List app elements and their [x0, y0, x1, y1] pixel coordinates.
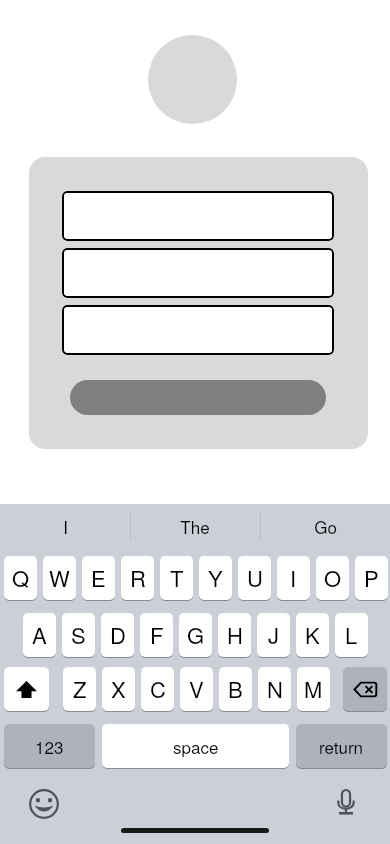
staticText: A — [32, 619, 47, 651]
staticText: C — [150, 673, 166, 705]
button[interactable]: W — [43, 556, 76, 600]
button[interactable]: V — [180, 667, 213, 711]
button[interactable]: E — [82, 556, 115, 600]
staticText: I — [63, 514, 68, 538]
staticText: E — [91, 562, 106, 594]
staticText: J — [268, 619, 280, 651]
staticText: I — [290, 562, 297, 594]
button[interactable]: L — [335, 613, 368, 657]
staticText: 123 — [35, 734, 64, 758]
button[interactable] — [70, 380, 326, 415]
staticText: X — [111, 673, 126, 705]
button[interactable]: N — [258, 667, 291, 711]
button[interactable]: Backspace — [343, 667, 387, 711]
button[interactable]: space — [102, 724, 289, 768]
button[interactable]: K — [296, 613, 329, 657]
staticText: S — [71, 619, 86, 651]
button[interactable]: U — [238, 556, 271, 600]
staticText: F — [150, 619, 164, 651]
button[interactable]: J — [257, 613, 290, 657]
staticText: The — [180, 514, 210, 538]
staticText: M — [304, 673, 323, 705]
button[interactable] — [62, 191, 334, 241]
button[interactable]: P — [355, 556, 388, 600]
staticText: G — [187, 619, 205, 651]
staticText: W — [49, 562, 70, 594]
button[interactable]: D — [101, 613, 134, 657]
button[interactable] — [62, 305, 334, 355]
staticText: Z — [73, 673, 87, 705]
button[interactable]: Shift — [4, 667, 49, 711]
staticText: Y — [208, 562, 223, 594]
button[interactable]: A — [23, 613, 56, 657]
button[interactable]: O — [316, 556, 349, 600]
button[interactable]: Q — [4, 556, 37, 600]
staticText: return — [319, 734, 364, 758]
staticText: K — [305, 619, 320, 651]
button[interactable]: Avatar — [148, 35, 237, 124]
button[interactable]: I — [0, 504, 130, 548]
staticText: Q — [12, 562, 30, 594]
button[interactable]: The — [130, 504, 260, 548]
button[interactable]: G — [179, 613, 212, 657]
staticText: O — [324, 562, 342, 594]
button[interactable]: H — [218, 613, 251, 657]
button[interactable]: M — [297, 667, 330, 711]
button[interactable]: Emoji keyboard — [29, 789, 59, 819]
button[interactable] — [62, 248, 334, 298]
staticText: R — [130, 562, 146, 594]
button[interactable]: I — [277, 556, 310, 600]
staticText: H — [227, 619, 243, 651]
staticText: V — [189, 673, 204, 705]
button[interactable]: T — [160, 556, 193, 600]
button[interactable]: C — [141, 667, 174, 711]
staticText: B — [228, 673, 243, 705]
staticText: N — [267, 673, 283, 705]
button[interactable]: Go — [260, 504, 390, 548]
button[interactable]: B — [219, 667, 252, 711]
button[interactable]: Z — [63, 667, 96, 711]
button[interactable]: S — [62, 613, 95, 657]
staticText: L — [345, 619, 358, 651]
staticText: T — [170, 562, 184, 594]
button[interactable]: Dictation — [331, 787, 361, 817]
staticText: U — [247, 562, 263, 594]
button[interactable]: F — [140, 613, 173, 657]
staticText: P — [364, 562, 379, 594]
staticText: D — [110, 619, 126, 651]
button[interactable]: 123 — [4, 724, 95, 768]
staticText: space — [173, 734, 219, 758]
button[interactable]: return — [296, 724, 387, 768]
button[interactable]: Y — [199, 556, 232, 600]
button[interactable]: X — [102, 667, 135, 711]
staticText: Go — [314, 514, 337, 538]
button[interactable]: R — [121, 556, 154, 600]
